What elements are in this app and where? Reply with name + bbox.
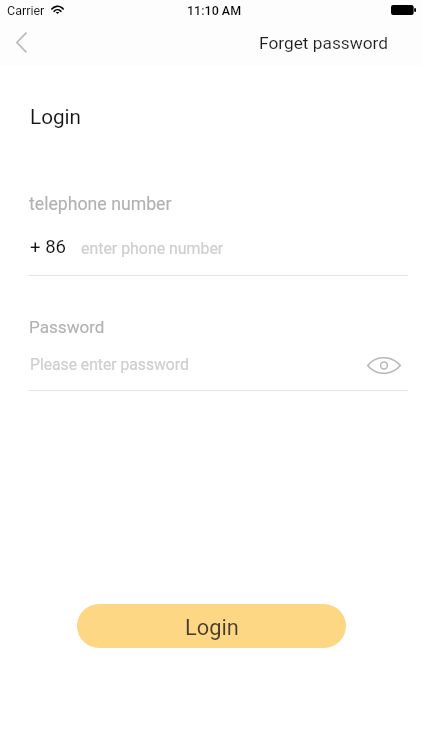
staticText: Login [30,105,82,129]
button[interactable]: Show password [361,344,406,387]
staticText: Login [185,615,239,641]
staticText: Forget password [259,33,389,53]
button[interactable]: Back [0,22,44,64]
staticText: Password [29,317,105,337]
staticText: telephone number [29,194,172,215]
staticText: enter phone number [81,239,224,258]
staticText: 11:10 AM [187,3,242,18]
staticText: + 86 [30,236,67,258]
staticText: Carrier [7,3,45,18]
button[interactable]: Login [77,604,346,648]
staticText: Please enter password [30,355,189,373]
